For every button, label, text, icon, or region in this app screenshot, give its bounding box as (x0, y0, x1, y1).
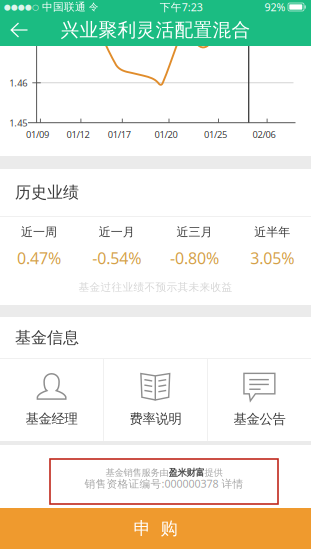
button[interactable]: 返回 (0, 14, 37, 46)
staticText: 0.47% (17, 247, 61, 269)
staticText: 近一月 (99, 225, 135, 239)
staticText: ●●●●○ (4, 2, 39, 12)
staticText: 3.05% (250, 247, 294, 269)
staticText: 近半年 (254, 225, 290, 239)
button[interactable]: 申 购 (0, 508, 311, 549)
staticText: 1.46 (9, 77, 27, 89)
staticText: 盈米财富 (168, 467, 204, 478)
staticText: 基金过往业绩不预示其未来收益 (78, 281, 232, 294)
staticText: 中国联通 (39, 0, 89, 13)
staticText: 销售资格证编号:000000378 详情 (84, 476, 243, 491)
button[interactable]: 费率说明 (104, 359, 207, 441)
staticText: 费率说明 (129, 411, 181, 427)
staticText: 令 (89, 1, 98, 13)
staticText: 01/09 (26, 128, 49, 140)
button[interactable]: 基金销售服务由 (50, 459, 278, 504)
staticText: 01/20 (154, 128, 177, 140)
staticText: 基金信息 (15, 328, 79, 347)
button[interactable]: 基金经理 (0, 359, 103, 441)
staticText: 提供 (204, 467, 222, 478)
staticText: 92% (264, 0, 285, 14)
staticText: 基金销售服务由 (105, 467, 168, 478)
button[interactable]: 基金公告 (208, 359, 311, 441)
staticText: 基金经理 (26, 411, 78, 427)
staticText: 下午7:23 (160, 0, 203, 14)
staticText: 01/17 (108, 128, 131, 140)
staticText: 01/12 (66, 128, 89, 140)
staticText: 历史业绩 (15, 183, 79, 202)
staticText: 02/06 (253, 128, 276, 140)
staticText: 1.45 (9, 117, 27, 129)
staticText: 申 购 (133, 518, 177, 539)
staticText: -0.80% (170, 247, 219, 269)
staticText: 01/25 (204, 128, 227, 140)
staticText: 近三月 (176, 225, 212, 239)
staticText: 兴业聚利灵活配置混合 (60, 18, 250, 41)
staticText: 基金公告 (233, 411, 285, 427)
staticText: -0.54% (92, 247, 141, 269)
staticText: 近一周 (21, 225, 57, 239)
